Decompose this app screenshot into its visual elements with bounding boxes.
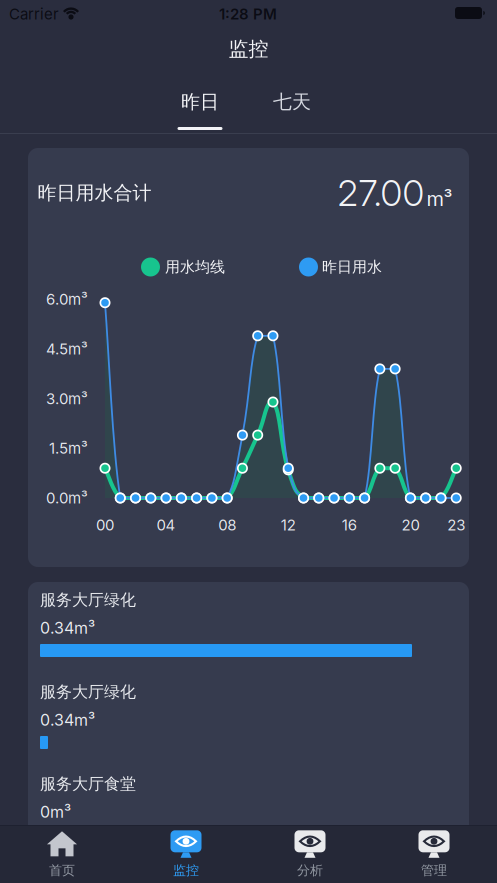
staticText: 分析: [297, 862, 323, 879]
staticText: 0.34m³: [40, 710, 95, 730]
staticText: 4.5m³: [46, 340, 88, 358]
staticText: 3.0m³: [46, 390, 88, 408]
staticText: 04: [157, 516, 176, 534]
staticText: 20: [401, 516, 419, 534]
staticText: 昨日用水合计: [37, 181, 151, 205]
staticText: 16: [342, 516, 357, 534]
staticText: 6.0m³: [46, 290, 88, 308]
staticText: 用水均线: [165, 258, 225, 276]
staticText: 0m³: [40, 802, 71, 822]
button[interactable]: 监控: [124, 825, 248, 883]
staticText: 23: [447, 516, 465, 534]
staticText: 0.34m³: [40, 618, 95, 638]
staticText: 服务大厅绿化: [40, 682, 136, 702]
staticText: 管理: [421, 862, 447, 879]
staticText: 服务大厅食堂: [40, 774, 136, 794]
staticText: 12: [281, 516, 296, 534]
staticText: 08: [218, 516, 236, 534]
staticText: 监控: [228, 36, 268, 62]
staticText: 1.5m³: [49, 439, 88, 457]
button[interactable]: 七天: [257, 80, 327, 124]
button[interactable]: 昨日: [165, 80, 235, 124]
staticText: Carrier: [9, 5, 59, 23]
staticText: 服务大厅绿化: [40, 590, 136, 610]
staticText: 1:28 PM: [219, 5, 277, 23]
staticText: 昨日: [181, 90, 219, 114]
button[interactable]: 分析: [248, 825, 372, 883]
staticText: 监控: [173, 862, 199, 879]
staticText: 27.00: [337, 171, 424, 215]
staticText: 0.0m³: [46, 489, 88, 507]
staticText: 00: [96, 516, 114, 534]
staticText: 首页: [49, 862, 75, 879]
staticText: m³: [426, 187, 452, 211]
staticText: 七天: [273, 90, 311, 114]
staticText: 昨日用水: [322, 258, 382, 276]
button[interactable]: 管理: [372, 825, 496, 883]
button[interactable]: 首页: [0, 825, 124, 883]
